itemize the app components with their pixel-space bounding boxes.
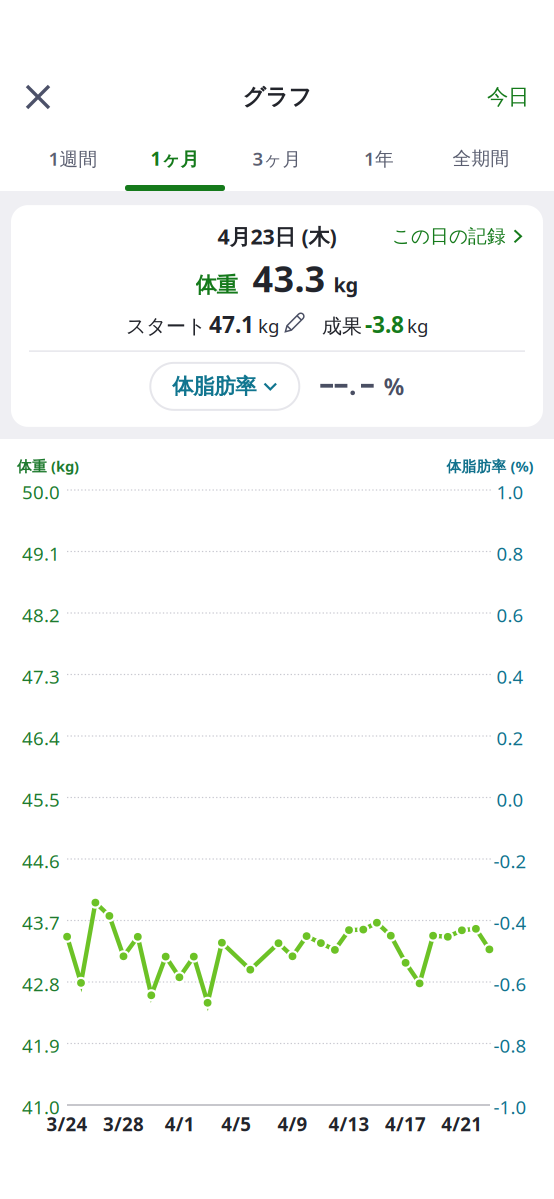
button[interactable]: この日の記録 bbox=[392, 225, 522, 248]
staticText: 体脂肪率 bbox=[172, 373, 256, 399]
staticText: 4/1 bbox=[165, 1112, 195, 1136]
staticText: 4月23日 (木) bbox=[217, 222, 336, 250]
staticText: 4/13 bbox=[328, 1112, 369, 1136]
staticText: 45.5 bbox=[22, 787, 60, 812]
staticText: 4/5 bbox=[221, 1112, 251, 1136]
staticText: 0.8 bbox=[496, 541, 523, 566]
button[interactable]: 体脂肪率 bbox=[150, 363, 299, 410]
staticText: 0.6 bbox=[496, 603, 523, 627]
staticText: 4/17 bbox=[385, 1112, 426, 1136]
staticText: 48.2 bbox=[22, 603, 60, 627]
staticText: 0.2 bbox=[496, 726, 523, 750]
staticText: % bbox=[384, 371, 404, 401]
staticText: 42.8 bbox=[22, 972, 60, 996]
staticText: 体重 bbox=[195, 272, 237, 298]
staticText: 41.9 bbox=[22, 1033, 60, 1058]
staticText: 43.3 bbox=[252, 254, 325, 302]
staticText: 1週間 bbox=[48, 146, 97, 171]
button[interactable]: 3ヶ月 bbox=[226, 132, 328, 191]
staticText: 成果 bbox=[322, 314, 362, 339]
staticText: kg bbox=[258, 313, 279, 338]
staticText: 47.1 bbox=[209, 309, 254, 339]
button[interactable]: 全期間 bbox=[430, 132, 532, 191]
staticText: -0.4 bbox=[493, 910, 526, 935]
staticText: -1.0 bbox=[493, 1095, 526, 1119]
staticText: -3.8 bbox=[365, 309, 404, 339]
button[interactable]: 閉じる bbox=[12, 71, 64, 123]
staticText: 3/28 bbox=[103, 1112, 144, 1136]
staticText: 50.0 bbox=[22, 480, 60, 504]
staticText: 0.4 bbox=[496, 664, 523, 689]
button[interactable]: 1年 bbox=[328, 132, 430, 191]
staticText: グラフ bbox=[242, 83, 311, 111]
staticText: 3/24 bbox=[46, 1112, 87, 1136]
staticText: 41.0 bbox=[22, 1095, 60, 1119]
staticText: 1年 bbox=[364, 146, 394, 171]
staticText: 体脂肪率 (%) bbox=[446, 456, 533, 476]
staticText: -0.2 bbox=[493, 849, 526, 873]
staticText: 体重 (kg) bbox=[17, 456, 79, 476]
staticText: kg bbox=[407, 313, 428, 338]
staticText: 43.7 bbox=[22, 910, 60, 935]
button[interactable]: 1週間 bbox=[22, 132, 124, 191]
staticText: 4/9 bbox=[278, 1112, 308, 1136]
staticText: 1ヶ月 bbox=[150, 146, 199, 171]
staticText: 0.0 bbox=[496, 787, 523, 812]
staticText: -0.8 bbox=[493, 1033, 526, 1058]
staticText: この日の記録 bbox=[392, 225, 506, 248]
staticText: 47.3 bbox=[22, 664, 60, 689]
staticText: 44.6 bbox=[22, 849, 60, 873]
button[interactable]: 1ヶ月 bbox=[124, 132, 226, 191]
staticText: スタート bbox=[126, 314, 206, 339]
button[interactable]: 今日 bbox=[481, 71, 535, 123]
staticText: 49.1 bbox=[22, 541, 60, 566]
staticText: 4/21 bbox=[441, 1112, 482, 1136]
staticText: kg bbox=[333, 271, 358, 298]
staticText: 46.4 bbox=[22, 726, 60, 750]
staticText: 1.0 bbox=[496, 480, 523, 504]
staticText: 3ヶ月 bbox=[252, 146, 301, 171]
staticText: 今日 bbox=[487, 84, 529, 110]
staticText: 全期間 bbox=[452, 147, 509, 170]
staticText: -0.6 bbox=[493, 972, 526, 996]
